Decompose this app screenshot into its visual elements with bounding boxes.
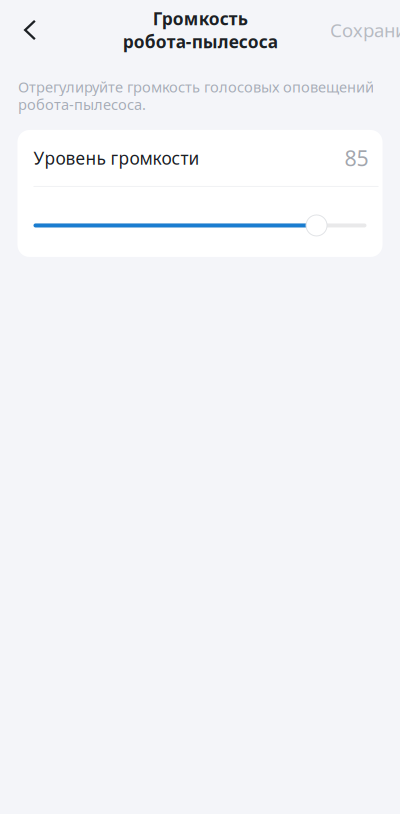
staticText: Уровень громкости [33,146,199,169]
button[interactable]: Уровень громкости [17,190,382,260]
button[interactable]: Сохранить [330,7,400,53]
staticText: 85 [344,144,368,172]
staticText: Громкость робота-пылесоса [122,7,277,53]
staticText: Сохранить [330,18,400,42]
staticText: Отрегулируйте громкость голосовых оповещ… [18,77,374,114]
button[interactable]: Назад [6,7,54,53]
